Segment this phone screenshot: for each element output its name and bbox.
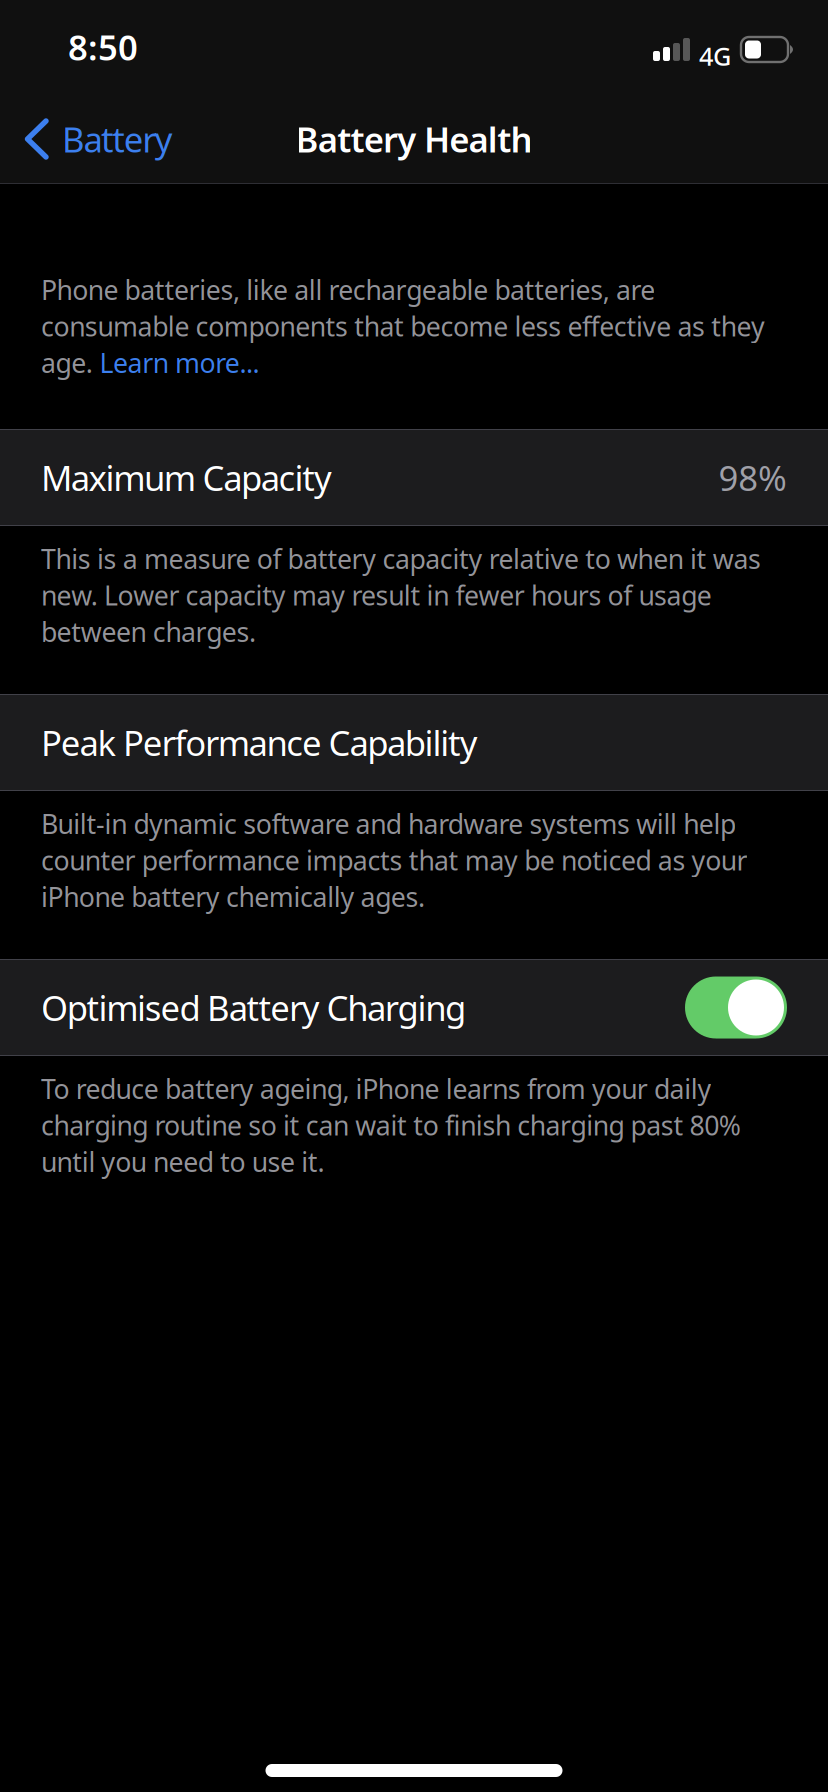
button[interactable]: Learn more... — [99, 345, 260, 380]
staticText: counter performance impacts that may be … — [41, 842, 747, 878]
staticText: 8:50 — [68, 24, 138, 70]
staticText: Learn more... — [99, 345, 260, 380]
staticText: age. — [41, 345, 99, 380]
staticText: Optimised Battery Charging — [41, 984, 466, 1030]
staticText: until you need to use it. — [41, 1144, 324, 1179]
staticText: This is a measure of battery capacity re… — [41, 541, 761, 576]
staticText: between charges. — [41, 614, 256, 649]
button[interactable]: Maximum Capacity — [0, 429, 828, 526]
button[interactable]: Back to Battery — [0, 94, 191, 184]
button[interactable]: Optimised Battery Charging — [0, 959, 828, 1056]
staticText: Peak Performance Capability — [41, 719, 478, 765]
staticText: Phone batteries, like all rechargeable b… — [41, 272, 655, 307]
staticText: charging routine so it can wait to finis… — [41, 1107, 741, 1143]
button[interactable]: Peak Performance Capability — [0, 694, 828, 791]
staticText: Maximum Capacity — [41, 454, 332, 500]
staticText: consumable components that become less e… — [41, 308, 765, 344]
staticText: 98% — [719, 454, 787, 500]
staticText: To reduce battery ageing, iPhone learns … — [41, 1071, 711, 1106]
staticText: iPhone battery chemically ages. — [41, 879, 425, 914]
staticText: 4G — [699, 39, 731, 73]
staticText: new. Lower capacity may result in fewer … — [41, 577, 712, 613]
staticText: Battery Health — [296, 116, 532, 162]
staticText: Built-in dynamic software and hardware s… — [41, 806, 736, 841]
staticText: Battery — [62, 116, 173, 162]
